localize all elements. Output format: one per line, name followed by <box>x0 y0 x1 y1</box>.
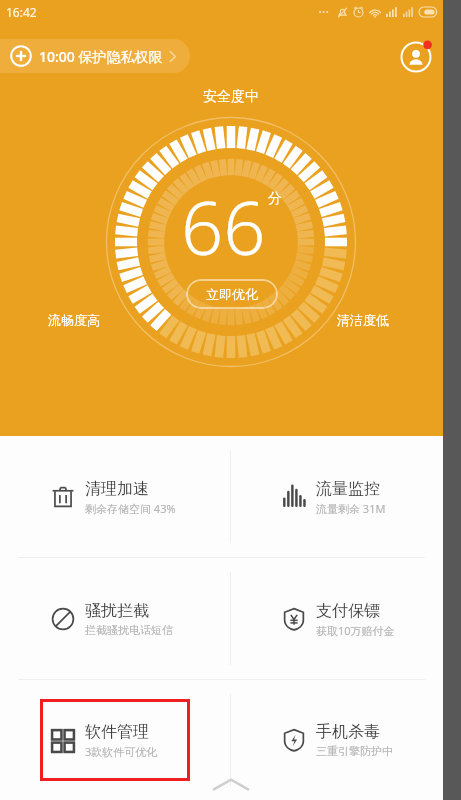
button[interactable]: 手机杀毒 <box>271 699 421 781</box>
staticText: 支付保镖 <box>316 601 380 621</box>
staticText: 66 <box>181 176 266 277</box>
staticText: 骚扰拦截 <box>85 601 149 621</box>
staticText: 流量监控 <box>316 479 380 499</box>
staticText: 获取10万赔付金 <box>316 623 395 638</box>
staticText: 剩余存储空间 43% <box>85 501 176 516</box>
staticText: 清理加速 <box>85 479 149 499</box>
button[interactable]: 清理加速 <box>40 456 190 538</box>
button[interactable]: 个人中心 <box>399 38 435 74</box>
button[interactable]: 展开 <box>209 776 253 794</box>
staticText: 流畅度高 <box>48 312 100 328</box>
staticText: 立即优化 <box>206 286 258 302</box>
staticText: 3款软件可优化 <box>85 744 158 759</box>
button[interactable]: 流量监控 <box>271 456 421 538</box>
staticText: 流量剩余 31M <box>316 501 386 516</box>
staticText: 清洁度低 <box>337 312 389 328</box>
button[interactable]: 立即优化 <box>186 279 278 309</box>
button[interactable]: 支付保镖 <box>271 578 421 660</box>
staticText: 三重引擎防护中 <box>316 744 393 758</box>
staticText: 拦截骚扰电话短信 <box>85 623 173 637</box>
staticText: 10:00 保护隐私权限 <box>39 47 163 66</box>
staticText: 安全度中 <box>203 88 259 106</box>
button[interactable]: 10:00 保护隐私权限 <box>0 39 190 73</box>
staticText: 软件管理 <box>85 722 149 742</box>
button[interactable]: 骚扰拦截 <box>40 578 190 660</box>
staticText: 手机杀毒 <box>316 722 380 742</box>
staticText: 分 <box>268 190 282 208</box>
button[interactable]: 软件管理 <box>40 699 190 781</box>
staticText: 16:42 <box>6 4 37 20</box>
